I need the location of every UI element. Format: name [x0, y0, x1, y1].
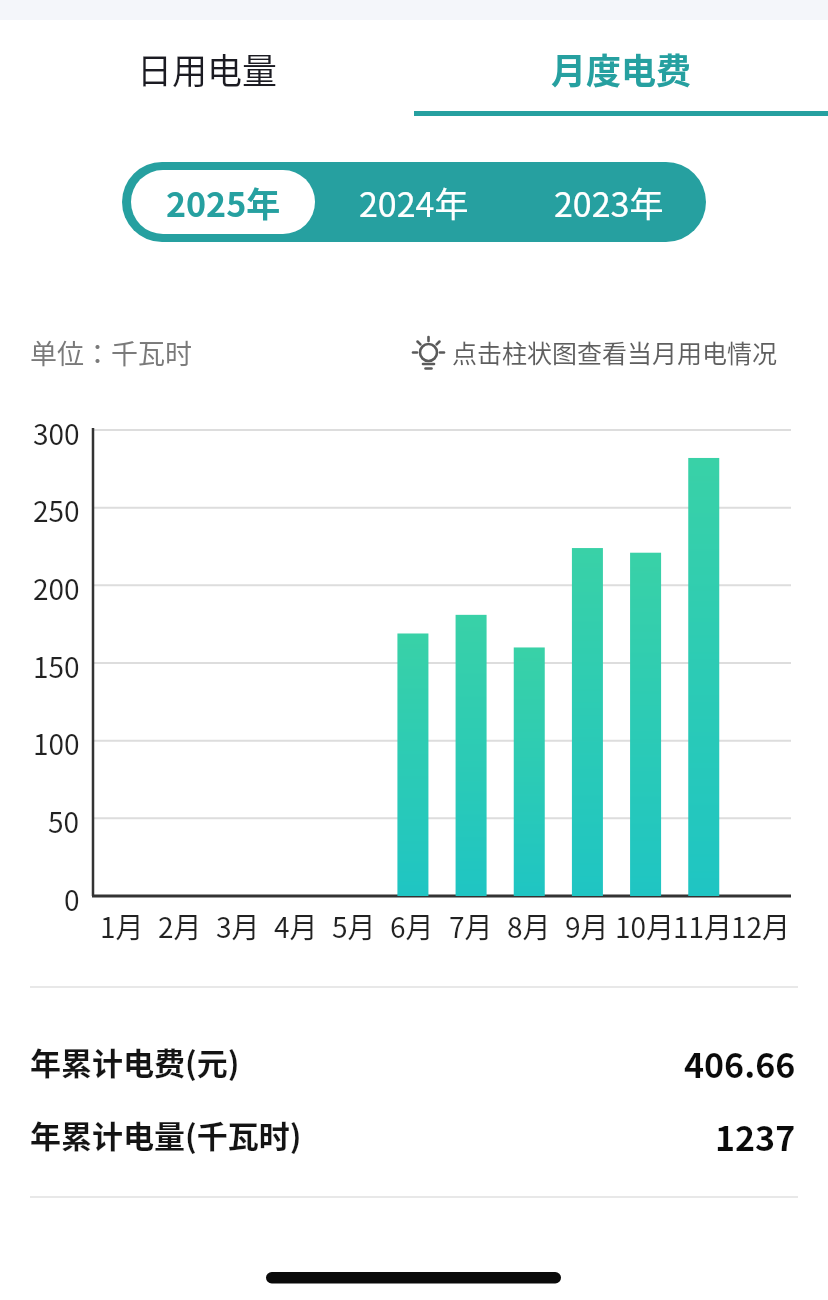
- staticText: 1月: [100, 906, 144, 942]
- staticText: 年累计电费(元): [30, 1039, 240, 1083]
- staticText: 9月: [565, 906, 609, 942]
- staticText: 10月: [615, 906, 675, 942]
- staticText: 2023年: [554, 178, 664, 227]
- staticText: 8月: [507, 906, 551, 942]
- staticText: 4月: [274, 906, 318, 942]
- staticText: 250: [33, 490, 80, 524]
- button[interactable]: 2025年: [131, 170, 315, 234]
- staticText: 日用电量: [137, 43, 278, 94]
- staticText: 12月: [731, 906, 791, 942]
- staticText: 150: [33, 646, 80, 680]
- staticText: 6月: [390, 906, 434, 942]
- staticText: 点击柱状图查看当月用电情况: [452, 334, 778, 370]
- staticText: 年累计电量(千瓦时): [30, 1112, 302, 1156]
- staticText: 11月: [673, 906, 733, 942]
- staticText: 300: [33, 413, 80, 447]
- staticText: 2024年: [359, 178, 469, 227]
- staticText: 2月: [158, 906, 202, 942]
- button[interactable]: 月度电费: [414, 20, 828, 116]
- button[interactable]: 日用电量: [0, 20, 414, 116]
- staticText: 200: [33, 568, 80, 602]
- staticText: 单位：千瓦时: [30, 333, 192, 372]
- staticText: 2025年: [166, 178, 281, 227]
- staticText: 月度电费: [551, 43, 692, 94]
- button[interactable]: 2024年: [316, 162, 511, 242]
- staticText: 1237: [715, 1112, 796, 1156]
- staticText: 100: [33, 723, 80, 757]
- staticText: 50: [48, 801, 80, 835]
- button[interactable]: 2023年: [511, 162, 706, 242]
- staticText: 7月: [449, 906, 493, 942]
- staticText: 406.66: [684, 1039, 796, 1083]
- staticText: 0: [64, 879, 80, 913]
- staticText: 3月: [216, 906, 260, 942]
- staticText: 5月: [332, 906, 376, 942]
